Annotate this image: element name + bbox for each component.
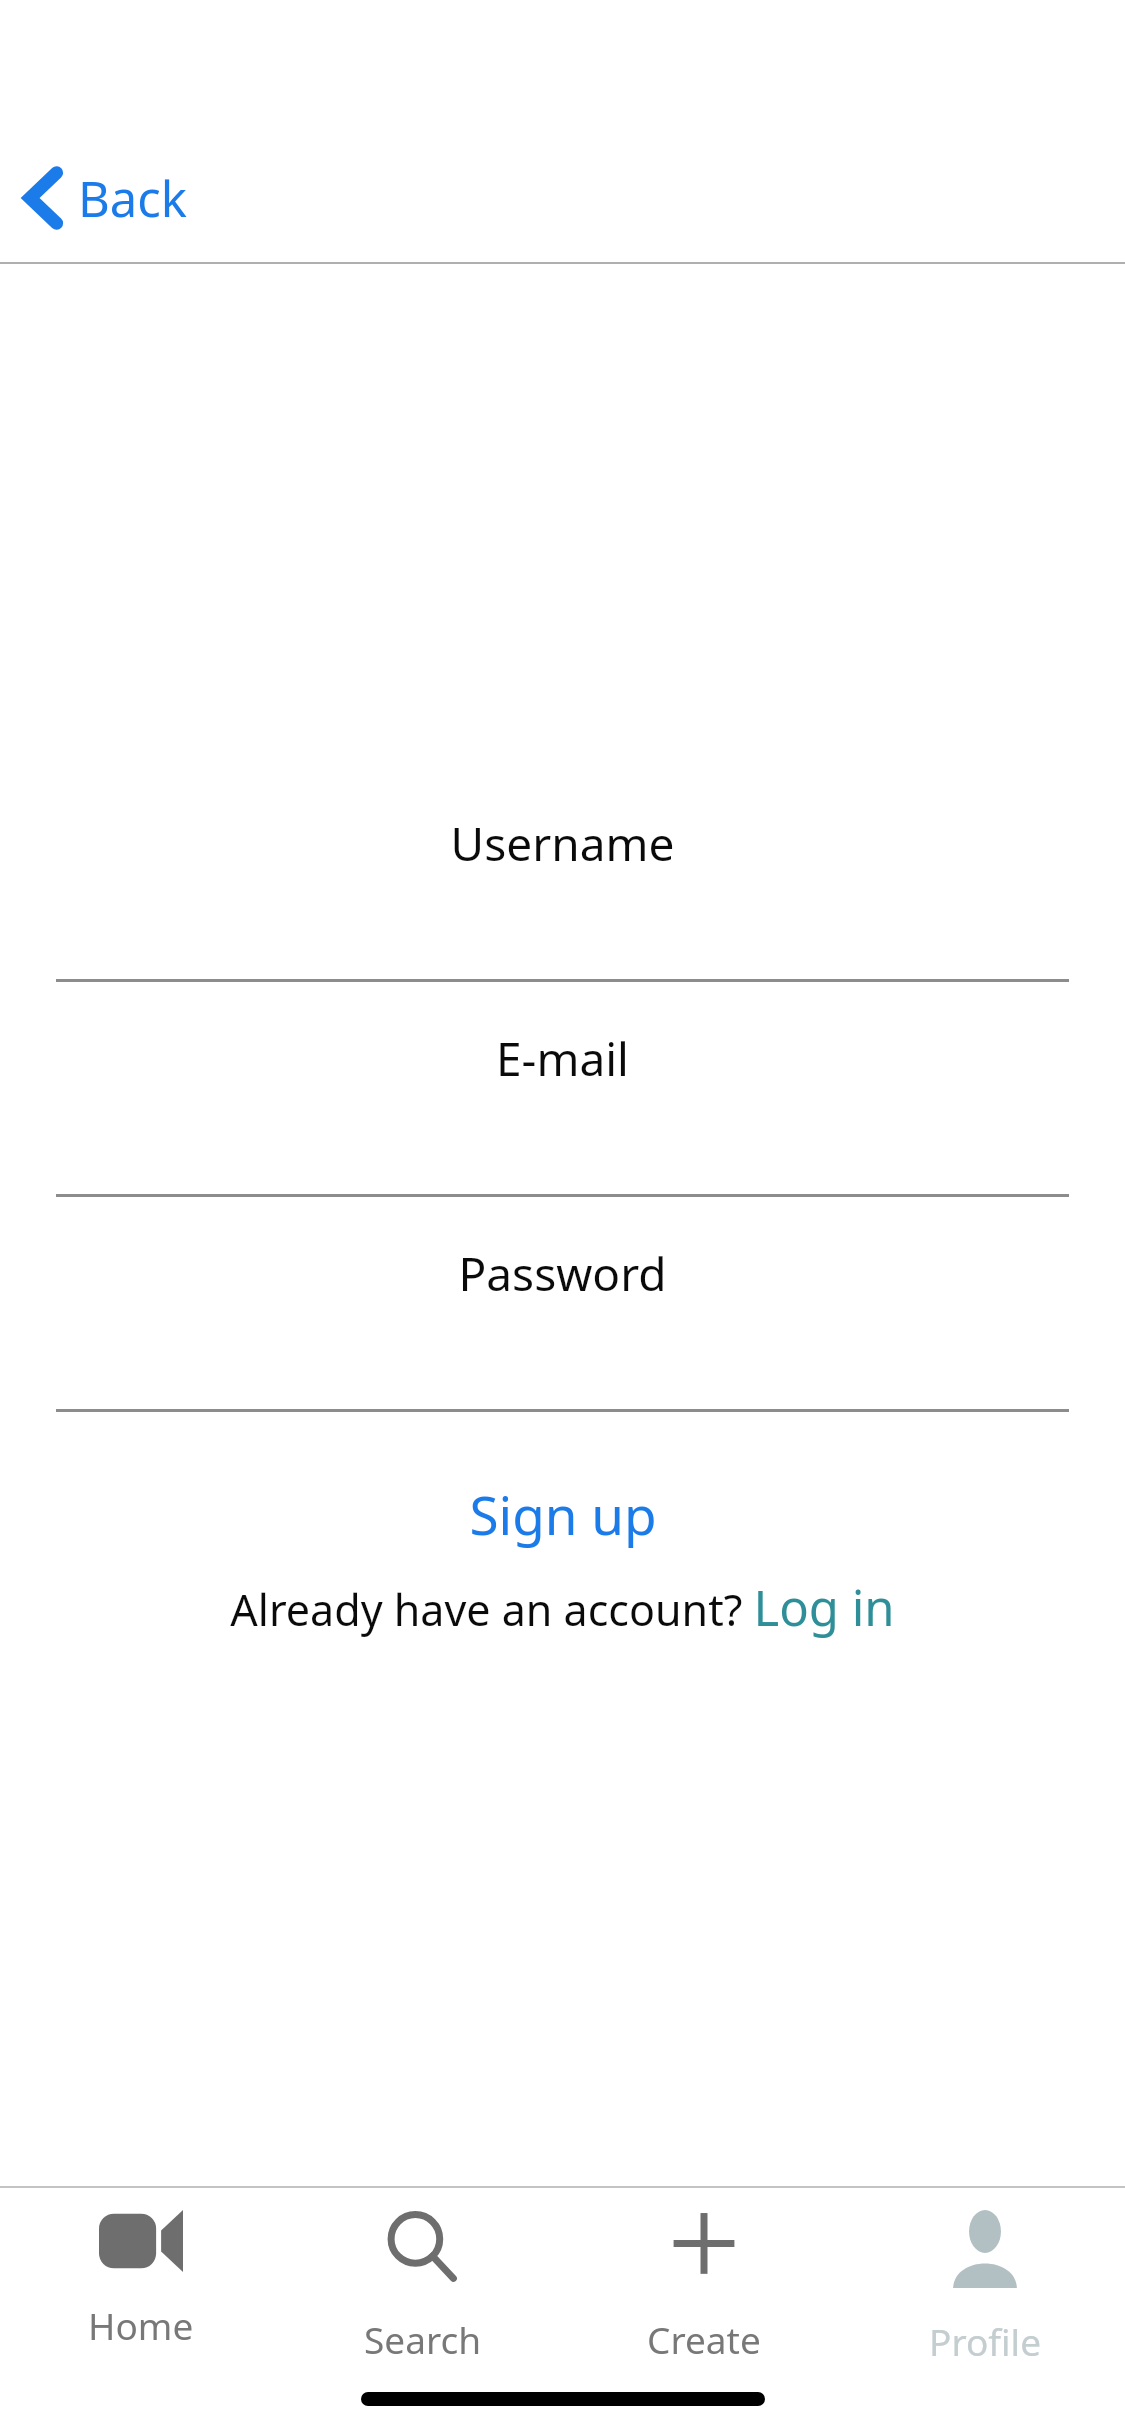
button[interactable]: E-mail xyxy=(0,1027,1125,1197)
staticText: Profile xyxy=(929,2316,1041,2358)
staticText: Back xyxy=(78,165,188,232)
button[interactable]: Create xyxy=(563,2188,844,2358)
button[interactable]: Profile xyxy=(844,2188,1125,2358)
other: Create xyxy=(666,2210,742,2286)
staticText: Create xyxy=(647,2314,761,2358)
button[interactable]: Home xyxy=(0,2188,282,2358)
button[interactable]: Password xyxy=(0,1242,1125,1412)
button[interactable]: Already have an account? Log in xyxy=(0,1570,1125,1644)
other: Search xyxy=(385,2210,461,2286)
staticText: Password xyxy=(0,1242,1125,1305)
button[interactable]: Username xyxy=(0,812,1125,982)
button[interactable]: Search xyxy=(282,2188,563,2358)
staticText: Home xyxy=(88,2300,194,2350)
staticText: Search xyxy=(364,2314,482,2358)
staticText: E-mail xyxy=(0,1027,1125,1090)
other: Home xyxy=(99,2210,183,2272)
staticText: Username xyxy=(0,812,1125,875)
button[interactable]: Back xyxy=(12,148,202,248)
button[interactable]: Sign up xyxy=(0,1472,1125,1556)
staticText: Sign up xyxy=(469,1478,657,1550)
other: Profile xyxy=(947,2210,1023,2288)
staticText: Already have an account? Log in xyxy=(230,1574,895,1641)
